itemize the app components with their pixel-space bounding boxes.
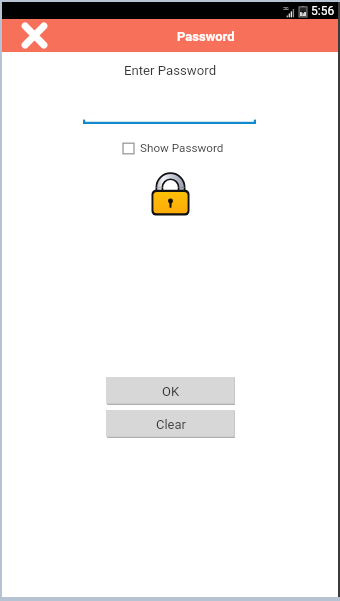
staticText: Show Password <box>140 141 224 155</box>
button[interactable]: OK <box>106 377 235 405</box>
staticText: 5:56 <box>311 4 335 18</box>
staticText: OK <box>162 384 180 399</box>
button[interactable]: Clear <box>106 410 235 438</box>
staticText: Password <box>177 29 235 44</box>
staticText: Clear <box>156 417 186 432</box>
button[interactable]: Close <box>21 22 48 49</box>
button[interactable] <box>83 105 256 124</box>
button[interactable]: Show Password <box>122 141 224 155</box>
staticText: Enter Password <box>124 63 217 78</box>
